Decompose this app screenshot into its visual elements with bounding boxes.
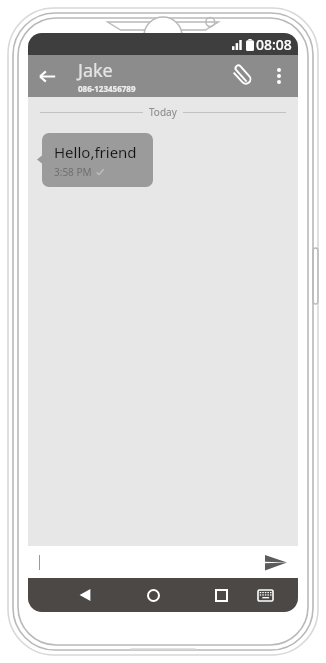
button[interactable]: Jake <box>66 58 224 94</box>
staticText: 086-123456789 <box>78 83 136 94</box>
staticText: Jake <box>78 58 113 83</box>
button[interactable]: Send <box>263 549 289 575</box>
staticText: 3:58 PM <box>54 165 92 179</box>
button[interactable]: Attach file <box>224 57 262 95</box>
button[interactable]: More options <box>262 59 296 93</box>
staticText: 08:08 <box>256 35 292 54</box>
button[interactable]: Hello,friend <box>42 133 153 187</box>
button[interactable]: Back <box>70 580 100 610</box>
button[interactable]: Keyboard <box>250 580 280 610</box>
button[interactable]: Recent apps <box>206 580 236 610</box>
staticText: Hello,friend <box>54 142 137 162</box>
staticText: Today <box>149 105 177 119</box>
button[interactable]: Send <box>28 546 298 578</box>
button[interactable]: Home <box>138 580 168 610</box>
button[interactable]: Back <box>28 57 66 95</box>
